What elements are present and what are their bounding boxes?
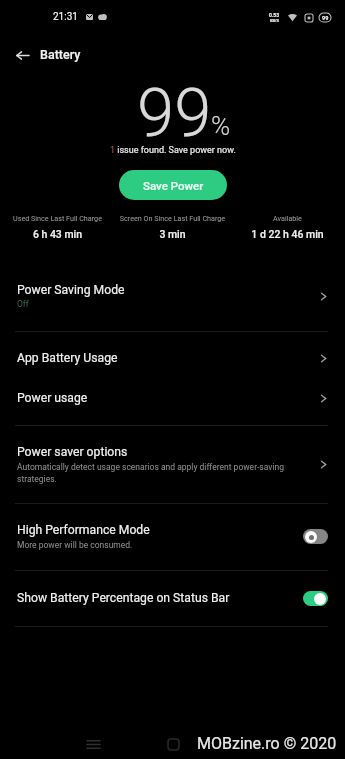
staticText: Screen On Since Last Full Charge <box>115 214 230 222</box>
staticText: More power will be consumed. <box>17 540 133 550</box>
button[interactable]: High Performance Mode <box>0 507 345 565</box>
staticText: App Battery Usage <box>17 351 318 365</box>
button[interactable]: Switch on <box>303 591 328 606</box>
staticText: 1 issue found. Save power now. <box>110 145 236 156</box>
button[interactable]: Power Saving Mode <box>0 265 345 327</box>
staticText: % <box>211 111 231 141</box>
button[interactable]: Power saver options <box>0 430 345 498</box>
staticText: Automatically detect usage scenarios and… <box>17 462 312 484</box>
button[interactable]: Back <box>2 38 42 72</box>
staticText: Power saver options <box>17 445 128 459</box>
staticText: 1 d 22 h 46 min <box>230 228 345 240</box>
staticText: Save Power <box>143 179 204 192</box>
button[interactable]: App Battery Usage <box>0 335 345 381</box>
staticText: Battery <box>40 47 81 62</box>
staticText: Available <box>230 214 345 222</box>
button[interactable]: Switch off <box>303 529 328 544</box>
button[interactable]: Power usage <box>0 375 345 421</box>
button[interactable]: Show Battery Percentage on Status Bar <box>0 572 345 624</box>
staticText: Used Since Last Full Charge <box>0 214 115 222</box>
staticText: 0.53 <box>269 12 280 18</box>
staticText: 99 <box>322 15 329 21</box>
staticText: Power usage <box>17 391 318 405</box>
staticText: 21:31 <box>53 11 78 23</box>
button[interactable]: Recents <box>79 730 107 758</box>
staticText: High Performance Mode <box>17 523 150 537</box>
staticText: MOBzine.ro © 2020 <box>197 734 337 753</box>
button[interactable]: Home <box>159 730 187 758</box>
button[interactable]: Back <box>242 730 270 758</box>
staticText: Power Saving Mode <box>17 283 125 297</box>
staticText: 3 min <box>115 228 230 240</box>
staticText: KB/S <box>270 18 280 23</box>
staticText: 99 <box>137 74 212 153</box>
button[interactable]: Save Power <box>119 170 227 200</box>
staticText: Show Battery Percentage on Status Bar <box>17 591 230 605</box>
staticText: Off <box>17 299 29 309</box>
staticText: 6 h 43 min <box>0 228 115 240</box>
